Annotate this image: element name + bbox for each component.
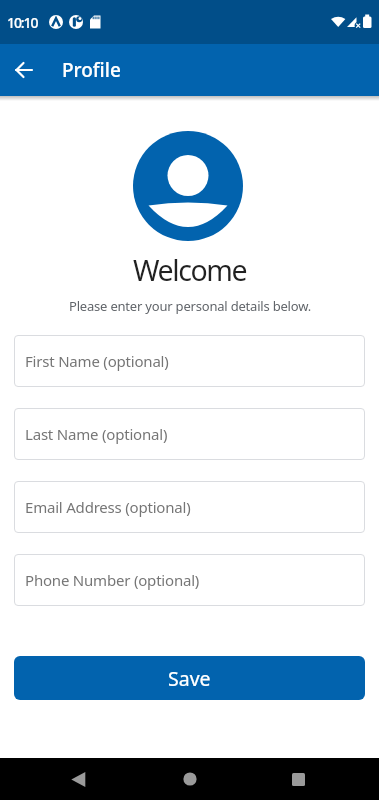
- staticText: Save: [168, 665, 211, 692]
- button[interactable]: [57, 758, 100, 800]
- button[interactable]: [277, 758, 320, 800]
- staticText: Last Name (optional): [25, 424, 168, 444]
- staticText: 10:10: [7, 13, 38, 32]
- staticText: Welcome: [133, 251, 247, 290]
- button[interactable]: [168, 758, 211, 800]
- button[interactable]: Last Name (optional): [14, 408, 365, 460]
- button[interactable]: First Name (optional): [14, 335, 365, 387]
- staticText: Email Address (optional): [25, 497, 191, 517]
- staticText: Please enter your personal details below…: [69, 297, 311, 315]
- button[interactable]: Email Address (optional): [14, 481, 365, 533]
- button[interactable]: [8, 54, 40, 86]
- button[interactable]: Phone Number (optional): [14, 554, 365, 606]
- button[interactable]: Save: [14, 656, 365, 700]
- staticText: Phone Number (optional): [25, 570, 200, 590]
- staticText: First Name (optional): [25, 351, 169, 371]
- staticText: Profile: [62, 57, 121, 83]
